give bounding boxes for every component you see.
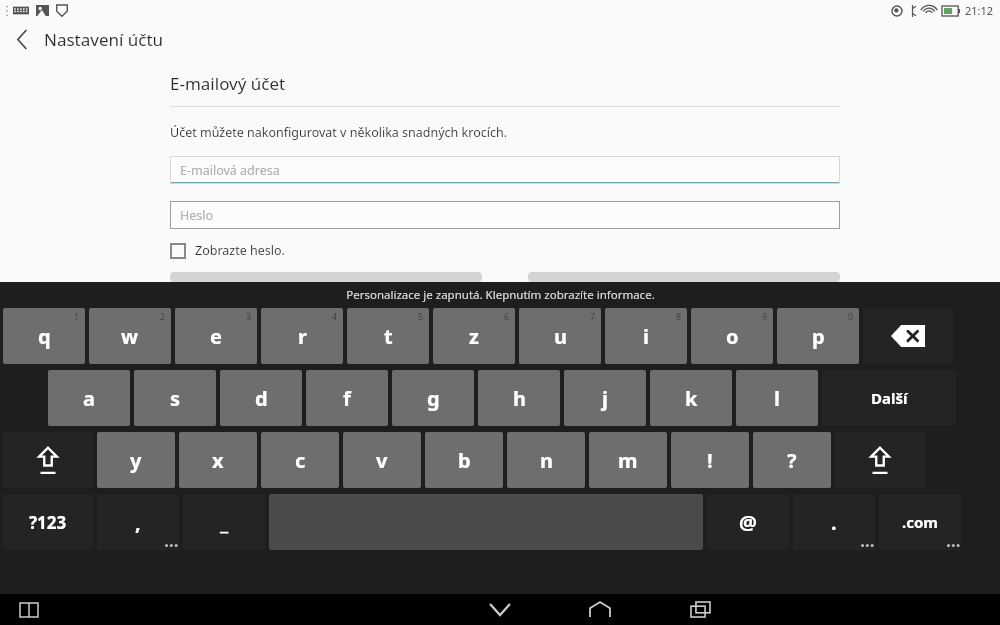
staticText: 1	[74, 310, 80, 322]
button[interactable]: g	[392, 370, 474, 426]
button[interactable]: Shift	[835, 432, 925, 488]
button[interactable]: t	[347, 308, 429, 364]
button[interactable]: o	[691, 308, 773, 364]
button[interactable]: r	[261, 308, 343, 364]
staticText: 4	[332, 310, 338, 322]
button[interactable]: E-mailová adresa	[170, 156, 840, 184]
staticText: t	[384, 323, 393, 350]
button[interactable]: Hide keyboard	[483, 594, 517, 625]
staticText: p	[812, 323, 825, 350]
staticText: o	[726, 323, 739, 350]
staticText: u	[554, 323, 567, 350]
button[interactable]: m	[589, 432, 667, 488]
button[interactable]: l	[736, 370, 818, 426]
staticText: b	[458, 447, 471, 474]
button[interactable]: Split screen	[14, 595, 44, 625]
button[interactable]: Back	[0, 20, 44, 59]
button[interactable]: f	[306, 370, 388, 426]
button[interactable]: Backspace	[863, 308, 953, 364]
button[interactable]: ?	[753, 432, 831, 488]
staticText: .com	[902, 512, 938, 532]
button[interactable]: Period	[793, 494, 875, 550]
staticText: Nastavení účtu	[44, 28, 164, 51]
staticText: ?123	[29, 511, 67, 534]
staticText: Heslo	[180, 207, 214, 224]
button[interactable]: e	[175, 308, 257, 364]
button[interactable]: At sign	[707, 494, 789, 550]
staticText: e	[210, 323, 222, 350]
button[interactable]: s	[134, 370, 216, 426]
staticText: j	[602, 385, 608, 412]
staticText: s	[170, 385, 181, 412]
staticText: .	[831, 509, 837, 536]
button[interactable]: p	[777, 308, 859, 364]
staticText: f	[343, 385, 351, 412]
staticText: 8	[676, 310, 682, 322]
button[interactable]: Recent apps	[683, 594, 717, 625]
button[interactable]: a	[48, 370, 130, 426]
staticText: ?	[787, 447, 797, 474]
staticText: 5	[418, 310, 424, 322]
staticText: Zobrazte heslo.	[195, 242, 285, 259]
staticText: k	[685, 385, 698, 412]
staticText: 7	[590, 310, 596, 322]
staticText: _	[220, 509, 229, 536]
staticText: 0	[848, 310, 854, 322]
button[interactable]: q	[3, 308, 85, 364]
staticText: @	[739, 509, 757, 536]
button[interactable]: Shift	[3, 432, 93, 488]
staticText: g	[427, 385, 440, 412]
button[interactable]: d	[220, 370, 302, 426]
staticText: h	[513, 385, 526, 412]
button[interactable]: Symbols	[3, 494, 93, 550]
staticText: x	[212, 447, 224, 474]
staticText: v	[376, 447, 388, 474]
button[interactable]: Comma	[97, 494, 179, 550]
button[interactable]: Home	[583, 594, 617, 625]
button[interactable]: Zobrazte heslo.	[170, 242, 285, 259]
staticText: n	[540, 447, 553, 474]
button[interactable]: z	[433, 308, 515, 364]
staticText: m	[618, 447, 638, 474]
staticText: 21:12	[965, 3, 994, 18]
button[interactable]: j	[564, 370, 646, 426]
staticText: q	[38, 323, 51, 350]
button[interactable]: w	[89, 308, 171, 364]
button[interactable]: y	[97, 432, 175, 488]
staticText: r	[298, 323, 307, 350]
staticText: l	[774, 385, 780, 412]
staticText: 6	[504, 310, 510, 322]
staticText: E-mailový účet	[170, 72, 286, 95]
button[interactable]: n	[507, 432, 585, 488]
button[interactable]: Underscore	[183, 494, 265, 550]
staticText: 3	[246, 310, 252, 322]
staticText: E-mailová adresa	[180, 162, 280, 179]
button[interactable]: h	[478, 370, 560, 426]
staticText: a	[83, 385, 95, 412]
staticText: i	[643, 323, 649, 350]
button[interactable]: b	[425, 432, 503, 488]
button[interactable]: x	[179, 432, 257, 488]
button[interactable]: k	[650, 370, 732, 426]
button[interactable]: dot com	[879, 494, 961, 550]
button[interactable]: v	[343, 432, 421, 488]
button[interactable]: Další	[822, 370, 956, 426]
staticText: 9	[762, 310, 768, 322]
staticText: y	[130, 447, 142, 474]
staticText: c	[295, 447, 306, 474]
button[interactable]: !	[671, 432, 749, 488]
button[interactable]: u	[519, 308, 601, 364]
button[interactable]: Heslo	[170, 201, 840, 229]
staticText: d	[255, 385, 268, 412]
staticText: z	[469, 323, 479, 350]
staticText: ,	[135, 509, 141, 536]
button[interactable]: c	[261, 432, 339, 488]
button[interactable]: Personalizace je zapnutá. Klepnutím zobr…	[0, 282, 1000, 308]
button[interactable]: Back	[0, 20, 1000, 59]
staticText: 2	[160, 310, 166, 322]
staticText: !	[707, 447, 713, 474]
button[interactable]: i	[605, 308, 687, 364]
